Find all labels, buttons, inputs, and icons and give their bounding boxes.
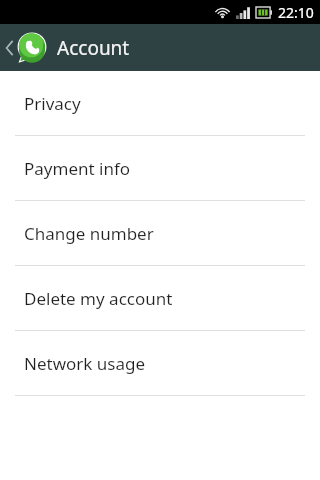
button[interactable]: Privacy bbox=[0, 71, 320, 135]
button[interactable]: Change number bbox=[0, 201, 320, 265]
button[interactable]: Back bbox=[0, 33, 320, 63]
staticText: Privacy bbox=[24, 92, 81, 115]
staticText: Network usage bbox=[24, 352, 146, 375]
staticText: Delete my account bbox=[24, 287, 173, 310]
staticText: Payment info bbox=[24, 157, 131, 180]
staticText: Account bbox=[57, 35, 130, 61]
staticText: 22:10 bbox=[278, 3, 314, 22]
button[interactable]: Payment info bbox=[0, 136, 320, 200]
staticText: Change number bbox=[24, 222, 154, 245]
button[interactable]: Network usage bbox=[0, 331, 320, 395]
button[interactable]: Delete my account bbox=[0, 266, 320, 330]
